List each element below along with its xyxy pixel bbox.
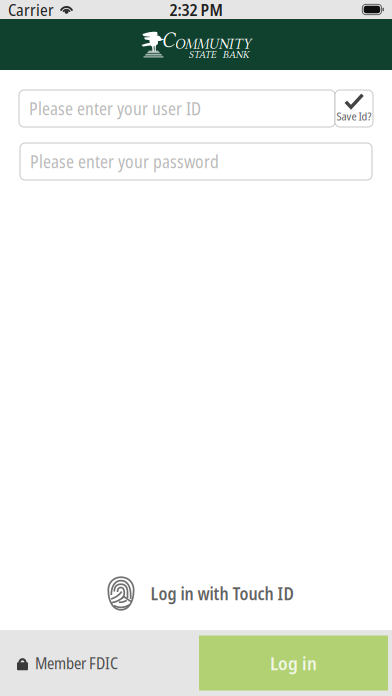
staticText: Please enter your user ID <box>29 97 201 120</box>
staticText: Log in <box>270 650 317 676</box>
staticText: Log in with Touch ID <box>150 582 293 605</box>
staticText: OMMUNITY <box>174 35 250 53</box>
button[interactable]: Log in <box>199 635 388 690</box>
staticText: C <box>161 28 174 53</box>
button[interactable]: Save Id? <box>335 90 373 127</box>
staticText: Please enter your password <box>30 150 219 173</box>
staticText: STATE BANK <box>188 49 249 61</box>
staticText: Member FDIC <box>35 652 118 674</box>
staticText: Save Id? <box>336 108 371 124</box>
staticText: Carrier <box>8 0 54 21</box>
staticText: 2:32 PM <box>169 0 222 21</box>
button[interactable]: Log in with Touch ID <box>94 573 297 614</box>
